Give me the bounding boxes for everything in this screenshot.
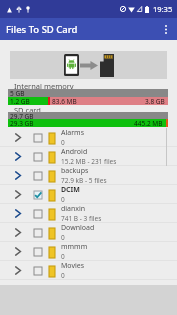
staticText: 445.2 MB [134,119,163,127]
staticText: 19:35 [153,4,173,14]
button[interactable]: Select Android [28,147,46,165]
staticText: 0 [61,195,65,203]
staticText: 29.3 GB [10,119,34,127]
staticText: 5 GB [10,89,25,97]
staticText: mmmm [61,242,88,252]
staticText: Download [61,223,95,233]
button[interactable]: Select mmmm [28,242,46,260]
button[interactable]: Expand dianxin [0,204,28,222]
button[interactable]: Expand Download [0,223,177,241]
staticText: Internal memory [14,81,74,91]
staticText: dianxin [61,204,86,214]
staticText: Files To SD Card [6,23,78,36]
button[interactable]: Expand dianxin [0,204,177,222]
staticText: 741 B - 3 files [61,214,102,222]
staticText: 0 [61,233,65,241]
button[interactable]: Expand Alarms [0,128,28,146]
button[interactable]: Expand Alarms [0,128,177,146]
button[interactable]: Expand Movies [0,261,177,279]
button[interactable]: Expand mmmm [0,242,177,260]
staticText: 83.6 MB [52,97,77,105]
button[interactable]: Files To SD Card [0,18,177,40]
staticText: 29.7 GB [10,112,34,119]
button[interactable]: Expand Movies [0,261,28,279]
button[interactable]: Expand Download [0,223,28,241]
button[interactable]: Expand backups [0,166,28,184]
staticText: Alarms [61,128,84,138]
staticText: 0 [61,138,65,146]
button[interactable]: Select backups [28,166,46,184]
button[interactable]: More options [155,18,177,40]
staticText: DCIM [61,185,80,195]
staticText: 72.9 kB - 5 files [61,176,107,184]
button[interactable]: Select Download [28,223,46,241]
staticText: 15.2 MB - 231 files [61,157,117,165]
staticText: 1.2 GB [10,97,30,105]
button[interactable]: Expand mmmm [0,242,28,260]
button[interactable]: Select Alarms [28,128,46,146]
button[interactable]: Expand DCIM [0,185,177,203]
staticText: 0 [61,252,65,260]
button[interactable]: Expand backups [0,166,177,184]
staticText: 3.8 GB [145,97,165,105]
staticText: 0 [61,271,65,279]
button[interactable]: Select dianxin [28,204,46,222]
button[interactable]: Select DCIM [28,185,46,203]
button[interactable]: Expand Android [0,147,28,165]
button[interactable]: Select Movies [28,261,46,279]
button[interactable]: Expand DCIM [0,185,28,203]
staticText: Movies [61,261,85,271]
staticText: Android [61,147,88,157]
button[interactable]: Expand Android [0,147,177,165]
staticText: backups [61,166,89,176]
staticText: SD card [14,105,41,115]
